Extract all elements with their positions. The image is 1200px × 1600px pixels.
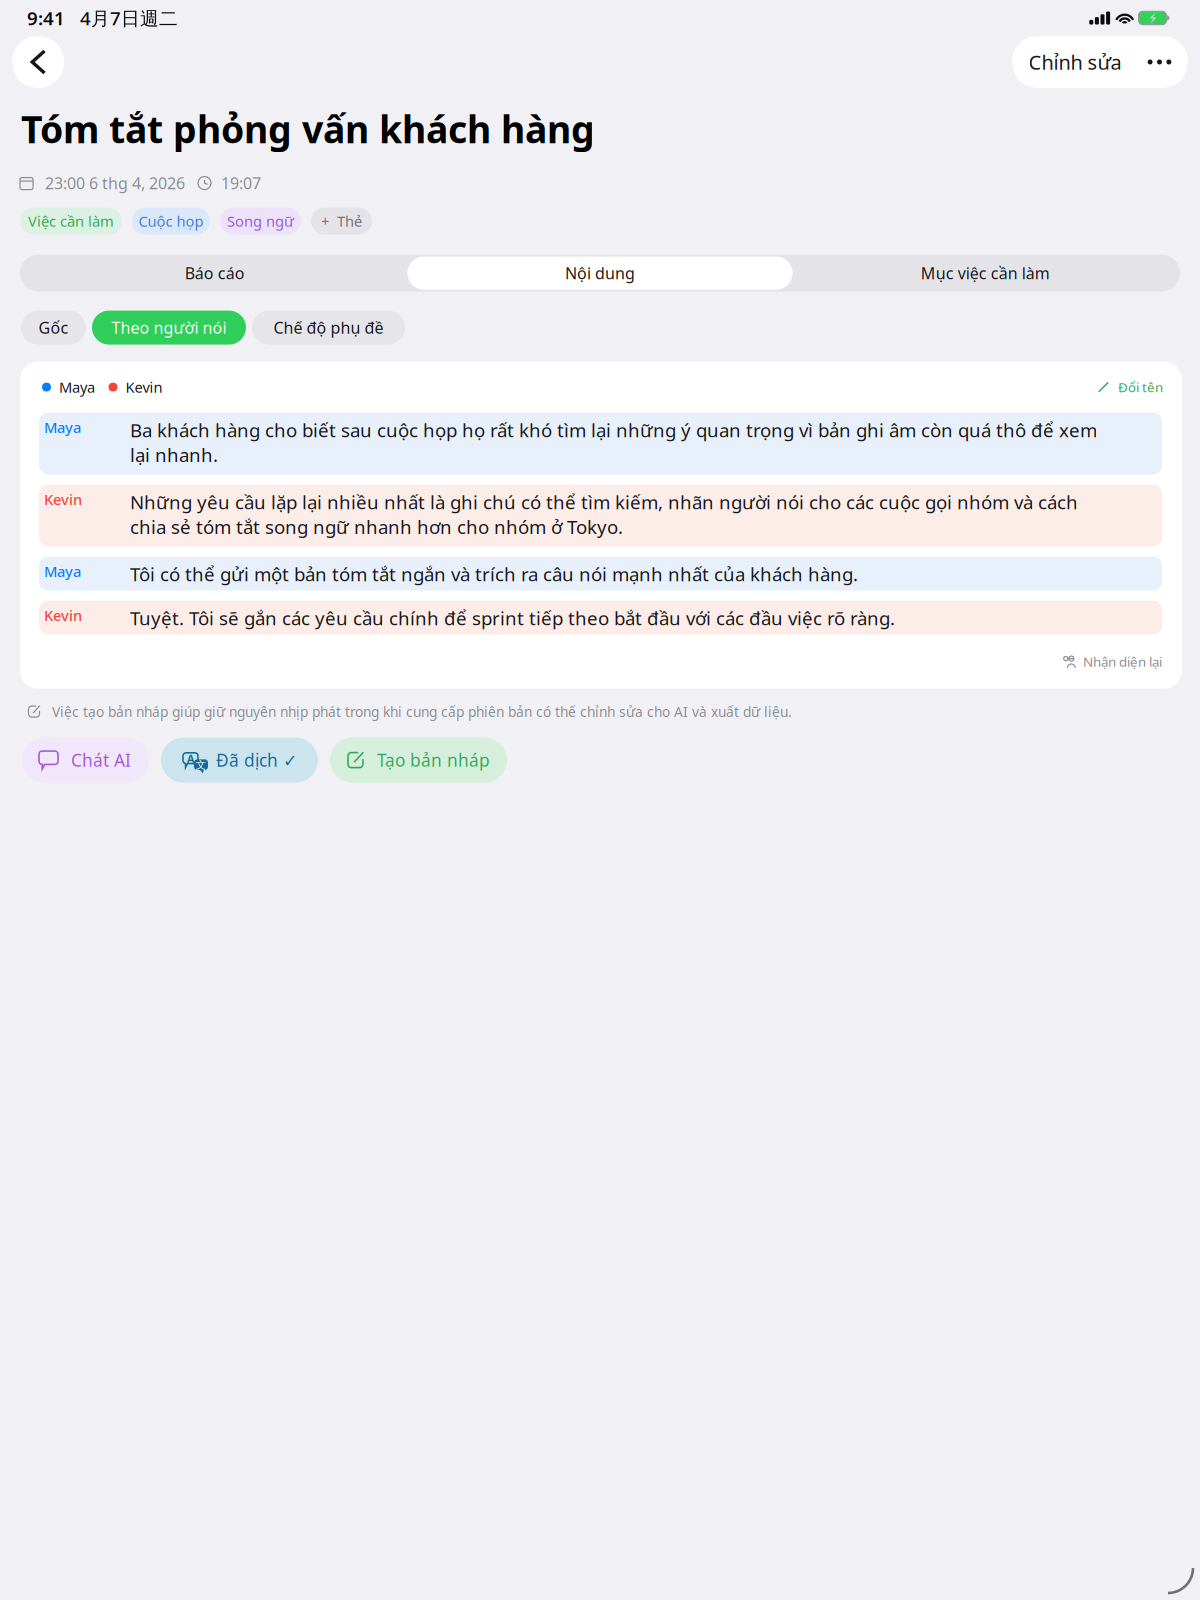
- button[interactable]: Cuộc họp: [132, 208, 210, 235]
- staticText: Chỉnh sửa: [1029, 49, 1122, 75]
- staticText: 19:07: [221, 172, 261, 194]
- staticText: Gốc: [38, 317, 68, 338]
- staticText: Những yêu cầu lặp lại nhiều nhất là ghi …: [130, 490, 1078, 539]
- staticText: 文: [195, 758, 206, 771]
- staticText: Tóm tắt phỏng vấn khách hàng: [21, 104, 595, 154]
- button[interactable]: Báo cáo: [22, 257, 407, 290]
- button[interactable]: Nhận diện lại: [1062, 653, 1162, 670]
- button[interactable]: Theo người nói: [92, 311, 246, 345]
- staticText: Việc cần làm: [28, 211, 114, 231]
- staticText: Chế độ phụ đề: [273, 317, 383, 338]
- staticText: Mục việc cần làm: [921, 262, 1050, 284]
- staticText: Báo cáo: [185, 262, 245, 284]
- staticText: Tuyệt. Tôi sẽ gắn các yêu cầu chính để s…: [130, 606, 895, 630]
- staticText: Nhận diện lại: [1077, 653, 1162, 670]
- button[interactable]: + Thẻ: [311, 208, 372, 235]
- button[interactable]: Nội dung: [407, 257, 793, 290]
- staticText: 9:41: [27, 6, 65, 30]
- button[interactable]: Tạo bản nháp: [330, 738, 507, 783]
- staticText: Kevin: [117, 377, 162, 397]
- staticText: Theo người nói: [111, 317, 226, 338]
- staticText: Việc tạo bản nháp giúp giữ nguyên nhịp p…: [52, 702, 792, 721]
- staticText: Tạo bản nháp: [377, 749, 490, 772]
- staticText: A: [187, 751, 194, 766]
- button[interactable]: Việc cần làm: [20, 208, 122, 235]
- button[interactable]: Mục việc cần làm: [793, 257, 1178, 290]
- staticText: Ba khách hàng cho biết sau cuộc họp họ r…: [130, 418, 1097, 467]
- staticText: Đã dịch ✓: [216, 749, 298, 772]
- staticText: Cuộc họp: [138, 211, 203, 231]
- staticText: Maya: [51, 377, 95, 397]
- staticText: Kevin: [44, 606, 82, 625]
- staticText: 4月7日週二: [65, 6, 178, 30]
- button[interactable]: Song ngữ: [220, 208, 301, 235]
- staticText: Song ngữ: [227, 211, 294, 231]
- button[interactable]: Chát AI: [22, 738, 149, 783]
- button[interactable]: A: [161, 738, 318, 783]
- staticText: Maya: [44, 562, 81, 581]
- staticText: Tôi có thể gửi một bản tóm tắt ngắn và t…: [130, 562, 858, 586]
- staticText: + Thẻ: [321, 211, 362, 231]
- staticText: Chát AI: [71, 749, 131, 772]
- button[interactable]: Back: [12, 36, 64, 88]
- staticText: Maya: [44, 418, 81, 437]
- staticText: Đổi tên: [1109, 378, 1163, 396]
- staticText: Nội dung: [565, 262, 635, 284]
- staticText: Kevin: [44, 490, 82, 509]
- staticText: 23:00 6 thg 4, 2026: [45, 172, 185, 194]
- button[interactable]: Chế độ phụ đề: [252, 311, 405, 345]
- button[interactable]: Gốc: [21, 311, 86, 345]
- button[interactable]: Đổi tên: [1098, 378, 1163, 396]
- button[interactable]: Chỉnh sửa: [1012, 36, 1188, 88]
